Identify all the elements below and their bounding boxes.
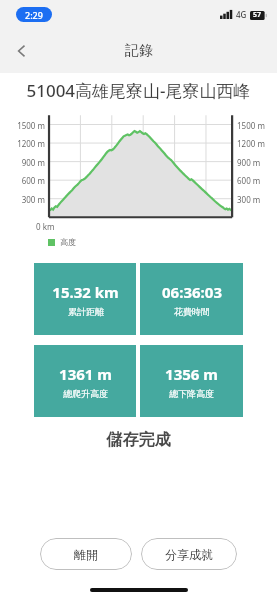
staticText: 900 m — [0, 157, 45, 168]
staticText: 900 m — [237, 157, 261, 168]
staticText: 300 m — [237, 194, 261, 205]
staticText: 2:29 — [25, 9, 43, 21]
staticText: 1361 m — [59, 364, 112, 384]
staticText: 51004高雄尾寮山-尾寮山西峰 — [26, 79, 251, 102]
button[interactable]: Back — [0, 29, 44, 73]
staticText: 花費時間 — [174, 306, 210, 317]
staticText: 高度 — [60, 237, 76, 247]
staticText: 4G — [236, 9, 247, 20]
staticText: 記錄 — [125, 42, 153, 60]
staticText: 分享成就 — [165, 547, 213, 562]
staticText: 300 m — [0, 194, 45, 205]
staticText: 總爬升高度 — [63, 388, 108, 399]
staticText: 1200 m — [237, 138, 265, 149]
button[interactable]: 離開 — [40, 538, 132, 570]
staticText: 1500 m — [237, 120, 265, 131]
button[interactable]: 1361 m — [34, 345, 136, 417]
staticText: 離開 — [74, 547, 98, 562]
staticText: 15.32 km — [52, 282, 119, 302]
button[interactable]: 1356 m — [140, 345, 243, 417]
staticText: 累計距離 — [68, 306, 104, 317]
staticText: 06:36:03 — [162, 282, 222, 302]
staticText: 1200 m — [0, 138, 45, 149]
button[interactable]: 06:36:03 — [140, 263, 243, 335]
staticText: 1500 m — [0, 120, 45, 131]
staticText: 57 — [253, 10, 262, 20]
button[interactable]: 分享成就 — [141, 538, 237, 570]
staticText: 總下降高度 — [169, 388, 214, 399]
staticText: 600 m — [237, 175, 261, 186]
staticText: 1356 m — [165, 364, 218, 384]
button[interactable]: 15.32 km — [34, 263, 136, 335]
staticText: 600 m — [0, 175, 45, 186]
staticText: 儲存完成 — [0, 430, 277, 450]
staticText: 0 km — [36, 221, 55, 232]
